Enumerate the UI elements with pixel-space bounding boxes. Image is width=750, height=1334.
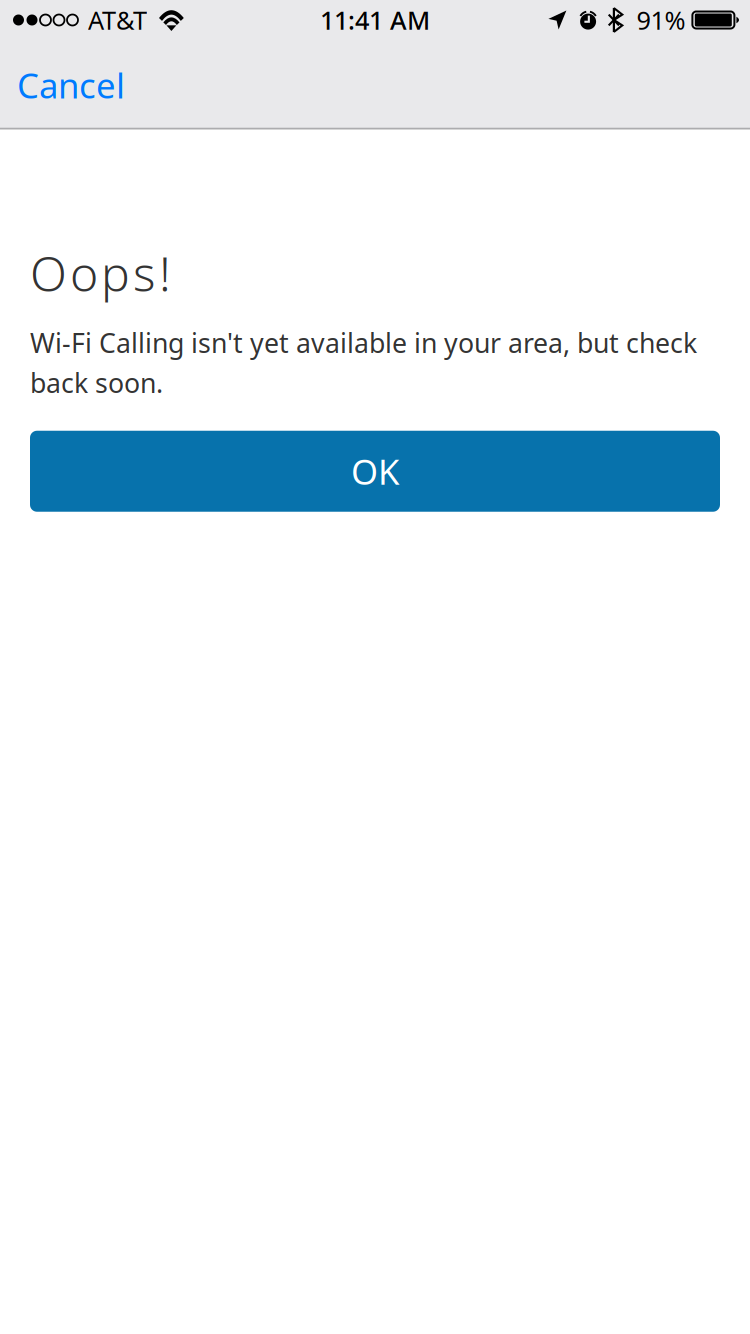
staticText: AT&T <box>88 3 147 37</box>
staticText: back soon. <box>30 365 163 400</box>
button[interactable]: OK <box>30 431 720 512</box>
staticText: Oops! <box>30 241 171 305</box>
staticText: 11:41 AM <box>320 3 430 37</box>
staticText: 91% <box>636 3 685 37</box>
staticText: Cancel <box>17 62 125 108</box>
button[interactable]: Cancel <box>0 40 141 130</box>
staticText: Wi-Fi Calling isn't yet available in you… <box>30 325 697 360</box>
staticText: OK <box>351 448 399 494</box>
